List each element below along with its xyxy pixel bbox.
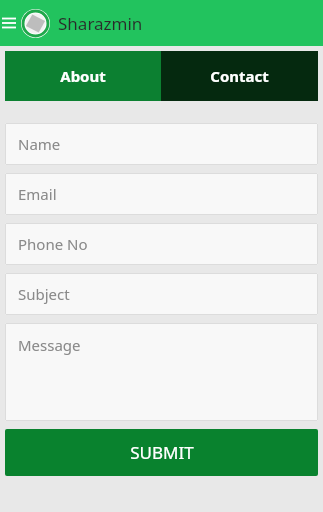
staticText: SUBMIT (130, 441, 194, 464)
staticText: Subject (18, 284, 70, 304)
staticText: Message (18, 335, 81, 355)
button[interactable]: Message (5, 323, 318, 421)
staticText: Phone No (18, 234, 88, 254)
button[interactable]: Open navigation menu (0, 0, 18, 46)
button[interactable]: About (5, 51, 161, 101)
button[interactable]: Contact (161, 51, 318, 101)
staticText: Name (18, 134, 61, 154)
staticText: Contact (210, 66, 269, 86)
button[interactable]: SUBMIT (5, 429, 318, 476)
button[interactable]: Name (5, 123, 318, 165)
button[interactable]: Phone No (5, 223, 318, 265)
staticText: Sharazmin (58, 12, 143, 35)
staticText: About (60, 66, 106, 86)
button[interactable]: Subject (5, 273, 318, 315)
button[interactable]: Email (5, 173, 318, 215)
staticText: Email (18, 184, 57, 204)
